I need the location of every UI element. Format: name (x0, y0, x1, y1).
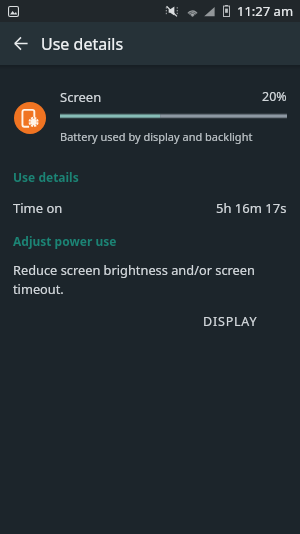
button[interactable]: Screen (0, 88, 300, 144)
other: Screenshot notification (8, 6, 19, 17)
staticText: Battery used by display and backlight (60, 129, 253, 144)
staticText: 11:27 am (237, 2, 294, 20)
staticText: Use details (41, 33, 124, 55)
staticText: Screen (60, 88, 102, 106)
staticText: 5h 16m 17s (216, 199, 287, 217)
staticText: Reduce screen brightness and/or screen t… (13, 261, 274, 298)
staticText: Adjust power use (13, 233, 117, 249)
staticText: Time on (13, 199, 63, 217)
staticText: Use details (13, 169, 79, 185)
staticText: DISPLAY (203, 313, 258, 330)
button[interactable]: DISPLAY (189, 308, 300, 335)
button[interactable]: Time on (0, 196, 300, 220)
staticText: 20% (262, 88, 287, 105)
button[interactable]: Back (0, 22, 41, 65)
